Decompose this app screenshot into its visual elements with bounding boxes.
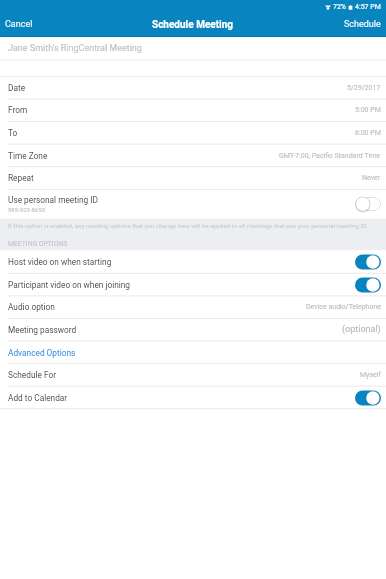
button[interactable]: Toggle off	[355, 196, 381, 212]
staticText: MEETING OPTIONS	[8, 240, 68, 248]
button[interactable]: Date	[0, 76, 386, 99]
button[interactable]: Toggle on	[355, 277, 381, 293]
staticText: Cancel	[5, 19, 33, 30]
button[interactable]: From	[0, 98, 386, 121]
staticText: Myself	[360, 371, 381, 379]
staticText: GMT-7:00, Pacific Standard Time	[279, 152, 381, 160]
staticText: To	[8, 128, 18, 138]
staticText: Audio option	[8, 302, 55, 312]
button[interactable]: Audio option	[0, 295, 386, 318]
staticText: 4:57 PM	[355, 3, 381, 11]
staticText: Date	[8, 83, 26, 93]
staticText: Schedule	[344, 19, 381, 30]
staticText: Repeat	[8, 173, 34, 183]
button[interactable]: Add to Calendar	[0, 386, 386, 409]
button[interactable]: Use personal meeting ID	[0, 189, 386, 219]
staticText: If this option is enabled, any meeting o…	[8, 222, 368, 229]
staticText: Use personal meeting ID	[8, 195, 98, 205]
button[interactable]: Jane Smith's RingCentral Meeting	[0, 37, 386, 60]
staticText: (optional)	[342, 324, 381, 335]
button[interactable]: Repeat	[0, 166, 386, 189]
button[interactable]: Time Zone	[0, 144, 386, 167]
staticText: Jane Smith's RingCentral Meeting	[8, 43, 142, 54]
button[interactable]: To	[0, 121, 386, 144]
staticText: 6:00 PM	[355, 129, 381, 137]
button[interactable]: Schedule For	[0, 363, 386, 386]
button[interactable]: Meeting password	[0, 318, 386, 341]
button[interactable]: Participant video on when joining	[0, 273, 386, 296]
staticText: Schedule For	[8, 370, 57, 380]
button[interactable]: Cancel	[0, 15, 41, 34]
staticText: Schedule Meeting	[152, 19, 234, 31]
staticText: Time Zone	[8, 151, 48, 161]
staticText: 5/29/2017	[347, 84, 381, 92]
staticText: From	[8, 105, 28, 115]
staticText: 595-923-8653	[8, 206, 46, 213]
staticText: 5:00 PM	[355, 106, 381, 114]
staticText: Advanced Options	[8, 348, 76, 358]
button[interactable]: Advanced Options	[0, 341, 386, 364]
button[interactable]: Schedule	[336, 15, 386, 34]
staticText: Host video on when starting	[8, 257, 112, 267]
staticText: Add to Calendar	[8, 393, 68, 403]
staticText: Never	[362, 174, 381, 182]
staticText: Device audio/Telephone	[306, 303, 381, 311]
staticText: Participant video on when joining	[8, 280, 131, 290]
button[interactable]: Host video on when starting	[0, 250, 386, 273]
button[interactable]: Toggle on	[355, 254, 381, 270]
staticText: Meeting password	[8, 325, 77, 335]
staticText: 72%	[333, 3, 346, 11]
button[interactable]: Toggle on	[355, 390, 381, 406]
